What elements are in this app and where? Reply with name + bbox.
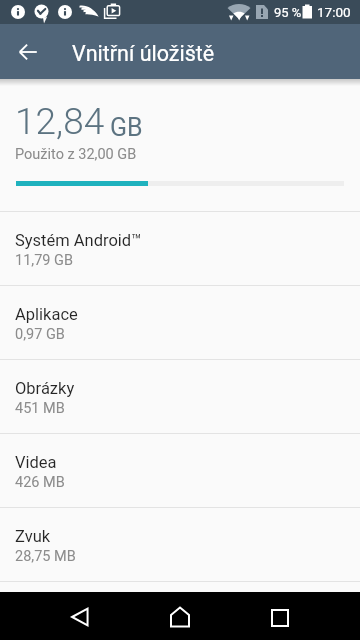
staticText: Aplikace bbox=[15, 305, 78, 324]
button[interactable]: Aplikace bbox=[0, 286, 360, 359]
staticText: 95 % bbox=[274, 5, 302, 20]
staticText: Systém Android™ bbox=[15, 231, 142, 250]
staticText: Zvuk bbox=[15, 527, 51, 546]
staticText: Vnitřní úložiště bbox=[72, 41, 215, 66]
button[interactable]: Back bbox=[4, 28, 52, 76]
button[interactable]: Home bbox=[156, 593, 204, 640]
staticText: 17:00 bbox=[317, 4, 351, 20]
staticText: 28,75 MB bbox=[15, 548, 76, 565]
staticText: 11,79 GB bbox=[15, 252, 73, 269]
button[interactable]: Back bbox=[56, 593, 104, 640]
staticText: Obrázky bbox=[15, 379, 75, 398]
button[interactable]: Systém Android™ bbox=[0, 212, 360, 285]
button[interactable]: Recent apps bbox=[256, 594, 304, 640]
staticText: 426 MB bbox=[15, 474, 65, 491]
staticText: 0,97 GB bbox=[15, 326, 65, 343]
button[interactable]: Videa bbox=[0, 434, 360, 507]
staticText: Použito z 32,00 GB bbox=[15, 146, 137, 163]
button[interactable]: Obrázky bbox=[0, 360, 360, 433]
staticText: 12,84 bbox=[15, 100, 105, 143]
button[interactable]: Zvuk bbox=[0, 508, 360, 581]
staticText: 451 MB bbox=[15, 400, 65, 417]
staticText: Videa bbox=[15, 453, 57, 472]
staticText: GB bbox=[110, 113, 143, 142]
